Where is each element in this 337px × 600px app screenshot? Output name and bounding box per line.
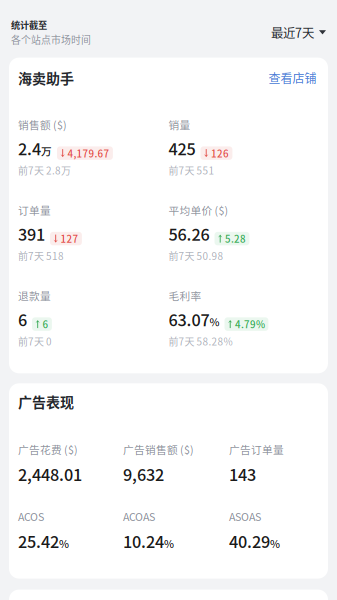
staticText: 销售额 ($)	[18, 117, 67, 132]
staticText: 广告表现	[18, 391, 74, 412]
staticText: 广告花费 ($)	[18, 442, 78, 457]
staticText: 前7天 50.98	[168, 248, 223, 263]
staticText: 10.24	[123, 529, 164, 553]
staticText: 126	[211, 146, 229, 160]
staticText: ASOAS	[229, 509, 261, 524]
staticText: 56.26	[168, 222, 209, 245]
staticText: %	[164, 535, 174, 551]
staticText: 2,448.01	[18, 462, 82, 486]
staticText: 25.42	[18, 529, 59, 553]
staticText: 前7天 518	[18, 248, 64, 263]
staticText: 143	[229, 462, 256, 486]
staticText: 海卖助手	[18, 68, 74, 88]
staticText: 4,179.67	[67, 146, 109, 160]
staticText: 4.79%	[235, 317, 265, 331]
staticText: 最近7天	[271, 23, 314, 41]
staticText: 6	[42, 317, 48, 331]
staticText: 425	[168, 136, 195, 160]
staticText: 6	[18, 307, 27, 331]
staticText: 广告销售额 ($)	[123, 442, 194, 457]
staticText: 5.28	[225, 232, 246, 246]
staticText: 查看店铺	[268, 69, 316, 86]
staticText: 前7天 0	[18, 334, 52, 348]
staticText: 391	[18, 222, 45, 245]
staticText: 前7天 551	[168, 163, 214, 177]
staticText: 退款量	[18, 288, 51, 303]
staticText: 9,632	[123, 462, 164, 486]
staticText: ACOAS	[123, 509, 155, 524]
staticText: 前7天 58.28%	[168, 334, 232, 348]
staticText: 前7天 2.8万	[18, 163, 71, 177]
staticText: ACOS	[18, 509, 44, 524]
staticText: 销量	[168, 117, 190, 132]
staticText: 统计截至	[11, 18, 47, 31]
staticText: 万	[41, 143, 52, 158]
staticText: 毛利率	[168, 288, 201, 303]
staticText: %	[59, 535, 69, 551]
staticText: 127	[60, 232, 78, 246]
staticText: 2.4	[18, 136, 41, 160]
staticText: 订单量	[18, 202, 51, 218]
staticText: 各个站点市场时间	[11, 32, 91, 47]
staticText: %	[270, 535, 280, 551]
staticText: 平均单价 ($)	[168, 202, 228, 218]
button[interactable]: 查看店铺	[268, 69, 316, 86]
staticText: 63.07	[168, 307, 209, 331]
staticText: %	[209, 314, 219, 329]
staticText: 广告订单量	[229, 442, 284, 457]
button[interactable]: 最近7天	[271, 23, 326, 41]
staticText: 40.29	[229, 529, 270, 553]
